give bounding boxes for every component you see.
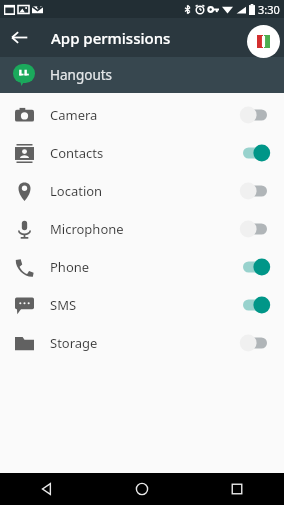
button[interactable]: Location	[0, 172, 284, 210]
button[interactable]: Home	[94, 473, 189, 505]
button[interactable]: Microphone	[0, 210, 284, 248]
staticText: Storage	[50, 334, 98, 352]
button[interactable]: Phone	[0, 248, 284, 286]
staticText: 3:30	[258, 2, 280, 17]
button[interactable]: On	[240, 143, 270, 163]
button[interactable]: On	[240, 295, 270, 315]
button[interactable]: Contacts	[0, 134, 284, 172]
button[interactable]: Hangouts	[0, 57, 284, 93]
staticText: Contacts	[50, 144, 104, 162]
staticText: Location	[50, 182, 103, 200]
button[interactable]: Off	[240, 333, 270, 353]
button[interactable]: SMS	[0, 286, 284, 324]
staticText: SMS	[50, 296, 77, 314]
button[interactable]: Recents	[189, 473, 284, 505]
button[interactable]: Account	[247, 25, 280, 58]
button[interactable]: Back	[0, 18, 39, 57]
button[interactable]: Off	[240, 219, 270, 239]
button[interactable]: On	[240, 257, 270, 277]
staticText: Camera	[50, 106, 98, 124]
button[interactable]: Off	[240, 181, 270, 201]
button[interactable]: Back	[0, 473, 94, 505]
staticText: Hangouts	[50, 66, 113, 84]
staticText: Phone	[50, 258, 90, 276]
button[interactable]: Off	[240, 105, 270, 125]
button[interactable]: Storage	[0, 324, 284, 362]
staticText: App permissions	[51, 28, 171, 48]
button[interactable]: Camera	[0, 96, 284, 134]
staticText: Microphone	[50, 220, 124, 238]
